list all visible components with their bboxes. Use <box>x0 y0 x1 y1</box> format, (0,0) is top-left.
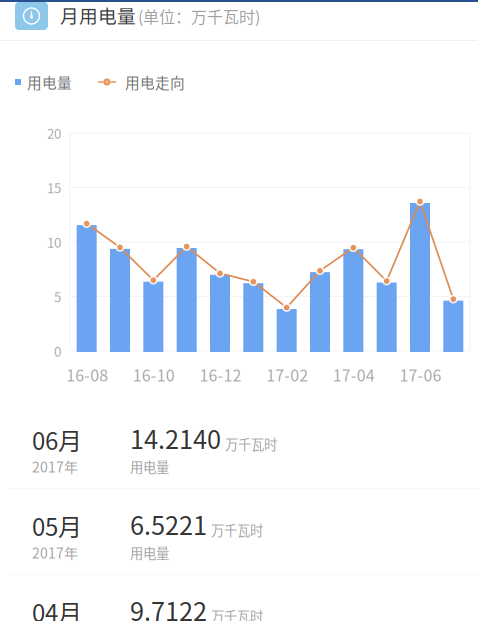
staticText: 10 <box>47 232 61 252</box>
staticText: 2017年 <box>32 542 78 563</box>
staticText: 05月 <box>32 508 82 543</box>
staticText: 16-10 <box>133 363 175 386</box>
button[interactable]: 04月 <box>0 575 478 621</box>
staticText: 20 <box>47 123 61 143</box>
staticText: 06月 <box>32 422 82 457</box>
button[interactable]: 06月 <box>0 403 478 489</box>
staticText: 16-12 <box>199 363 241 386</box>
staticText: 15 <box>47 178 61 197</box>
staticText: 2017年 <box>32 456 78 477</box>
staticText: 04月 <box>32 594 82 621</box>
staticText: 6.5221 <box>130 506 207 542</box>
staticText: 0 <box>54 341 61 361</box>
staticText: 用电量 <box>27 71 72 93</box>
staticText: 9.7122 <box>130 592 207 621</box>
button[interactable]: 05月 <box>0 489 478 575</box>
staticText: 5 <box>54 287 61 306</box>
staticText: 用电量 <box>130 457 169 476</box>
staticText: 17-06 <box>399 363 441 386</box>
staticText: 用电量 <box>130 543 169 562</box>
staticText: 万千瓦时 <box>211 520 263 539</box>
staticText: (单位：万千瓦时) <box>138 4 260 28</box>
staticText: 16-08 <box>66 363 108 386</box>
staticText: 万千瓦时 <box>211 606 263 621</box>
staticText: 用电走向 <box>125 71 185 93</box>
staticText: 月用电量 <box>60 1 136 28</box>
staticText: 万千瓦时 <box>225 434 277 453</box>
staticText: 14.2140 <box>130 420 221 456</box>
staticText: 17-02 <box>266 363 308 386</box>
staticText: 17-04 <box>333 363 375 386</box>
